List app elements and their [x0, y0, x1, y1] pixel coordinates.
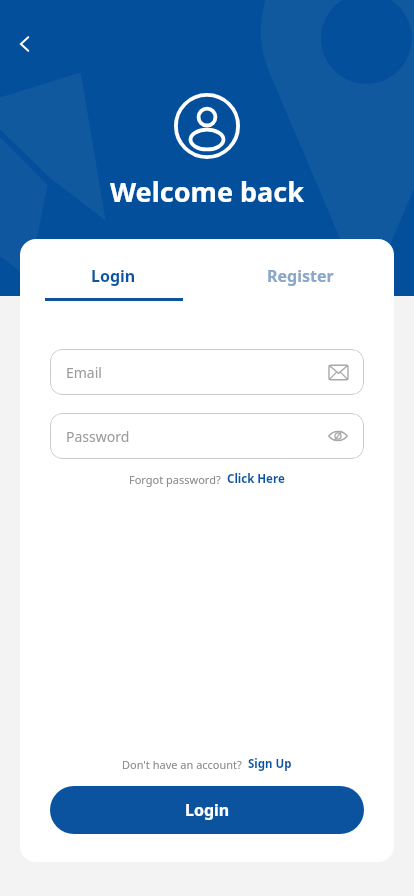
button[interactable]: Password [50, 413, 364, 459]
button[interactable]: Click Here [221, 471, 285, 487]
button[interactable]: Register [207, 239, 394, 301]
staticText: Forgot password? [129, 472, 221, 487]
staticText: Welcome back [110, 173, 304, 210]
staticText: Login [185, 799, 230, 821]
staticText: Email [66, 363, 329, 382]
staticText: Register [267, 265, 334, 287]
button[interactable]: Login [20, 239, 207, 301]
staticText: Sign Up [248, 756, 292, 772]
staticText: Don't have an account? [122, 757, 242, 772]
button[interactable]: Sign Up [242, 756, 292, 772]
staticText: Password [66, 427, 328, 446]
staticText: Login [91, 265, 136, 287]
button[interactable]: Login [50, 786, 364, 834]
button[interactable]: Email [50, 349, 364, 395]
staticText: Click Here [227, 471, 285, 487]
button[interactable]: Back [8, 27, 42, 61]
